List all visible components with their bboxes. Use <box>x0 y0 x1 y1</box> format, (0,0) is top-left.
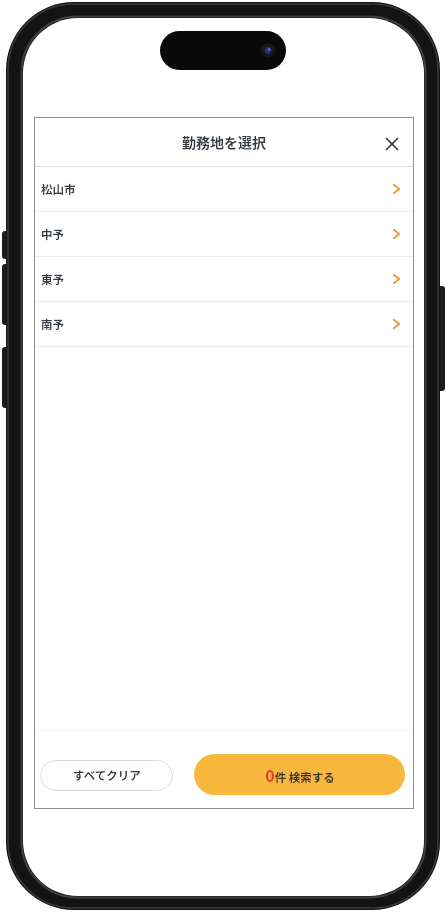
button[interactable]: すべてクリア <box>40 760 173 791</box>
button[interactable]: 中予 <box>34 212 414 256</box>
button[interactable]: 0件 検索する <box>194 754 405 795</box>
staticText: 中予 <box>41 226 64 243</box>
staticText: 勤務地を選択 <box>182 132 266 152</box>
button[interactable] <box>374 124 410 160</box>
staticText: 松山市 <box>41 181 76 198</box>
button[interactable]: 松山市 <box>34 167 414 211</box>
staticText: 東予 <box>41 271 64 288</box>
button[interactable]: 南予 <box>34 302 414 346</box>
staticText: 0件 検索する <box>265 763 335 786</box>
staticText: すべてクリア <box>73 767 141 784</box>
staticText: 南予 <box>41 316 64 333</box>
button[interactable]: 東予 <box>34 257 414 301</box>
